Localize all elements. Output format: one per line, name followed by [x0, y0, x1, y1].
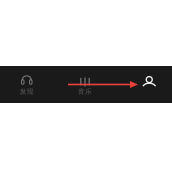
staticText: 音乐 [78, 87, 92, 96]
button[interactable]: 发现 [0, 66, 53, 103]
button[interactable]: Profile [116, 66, 172, 103]
button[interactable]: 音乐 [53, 66, 116, 103]
staticText: 发现 [20, 87, 34, 96]
